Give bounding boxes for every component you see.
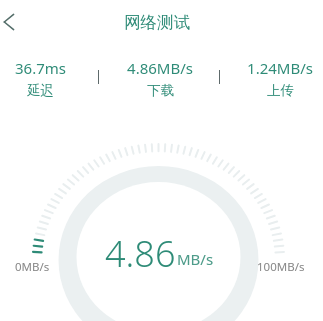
staticText: MB/s	[177, 249, 214, 269]
staticText: 1.24MB/s	[247, 58, 313, 78]
staticText: 下载	[147, 82, 174, 99]
button[interactable]: 4.86MB/s	[106, 58, 214, 99]
staticText: 4.86MB/s	[127, 58, 193, 78]
staticText: 100MB/s	[257, 259, 305, 275]
staticText: 网络测试	[124, 12, 190, 33]
staticText: 0MB/s	[15, 259, 50, 275]
staticText: 4.86	[105, 229, 176, 278]
button[interactable]: 1.24MB/s	[226, 58, 323, 99]
staticText: 延迟	[27, 82, 54, 99]
button[interactable]: Back	[0, 0, 28, 42]
staticText: 上传	[267, 82, 294, 99]
button[interactable]: 36.7ms	[0, 58, 94, 99]
staticText: 36.7ms	[15, 58, 66, 78]
